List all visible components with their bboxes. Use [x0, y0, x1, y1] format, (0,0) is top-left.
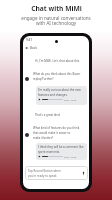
other: Play	[38, 155, 41, 158]
staticText: 0:05 / 0:09	[64, 155, 77, 158]
button[interactable]: Tap Record Button when you're ready to s…	[25, 166, 88, 180]
staticText: I think they will be a comment like spen…	[38, 145, 84, 154]
other: Play	[38, 98, 41, 101]
staticText: What kind of features do you think that …	[33, 126, 80, 140]
button[interactable]: I'm really curious about the new feature…	[36, 86, 87, 105]
button[interactable]: I think they will be a comment like spen…	[36, 143, 87, 160]
other: Record	[81, 171, 86, 176]
other: Back	[25, 46, 29, 50]
staticText: Hi, I'm MiMi. Let's chat about this.	[35, 59, 80, 63]
staticText: Chat with MiMi	[31, 4, 82, 13]
staticText: 0:05 / 0:09	[64, 98, 77, 101]
staticText: Back	[30, 46, 38, 50]
staticText: Tap Record Button when you're ready to s…	[28, 169, 61, 177]
staticText: That's a great idea!	[35, 113, 61, 117]
button[interactable]: Back	[25, 44, 38, 51]
staticText: What do you think about this Bauer repla…	[33, 72, 81, 81]
staticText: engage in natural conversations with AI …	[21, 15, 91, 26]
staticText: I'm really curious about the new feature…	[38, 88, 81, 97]
staticText: 9:41	[26, 38, 33, 42]
